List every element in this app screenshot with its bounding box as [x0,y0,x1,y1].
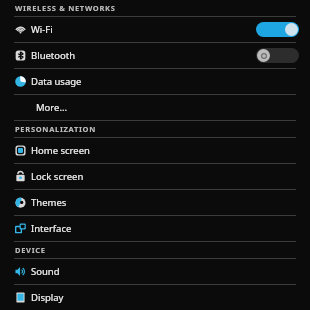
staticText: Wi-Fi [31,23,53,36]
button[interactable]: Wi-Fi [0,17,310,42]
button[interactable]: Sound [0,259,310,284]
button[interactable]: Home screen [0,138,310,163]
staticText: WIRELESS & NETWORKS [15,3,116,13]
staticText: Bluetooth [31,49,76,62]
button[interactable]: Data usage [0,69,310,94]
staticText: DEVICE [15,245,46,255]
staticText: PERSONALIZATION [15,124,97,134]
button[interactable]: Bluetooth [0,43,310,68]
button[interactable]: Lock screen [0,164,310,189]
button[interactable]: Themes [0,190,310,215]
button[interactable]: Display [0,285,310,310]
staticText: Data usage [31,75,82,88]
button[interactable]: Interface [0,216,310,241]
staticText: Sound [31,265,60,278]
staticText: Interface [31,222,72,235]
button[interactable]: More... [0,95,310,120]
staticText: Display [31,291,64,304]
staticText: More... [36,101,68,114]
staticText: Themes [31,196,67,209]
staticText: Home screen [31,144,90,157]
staticText: Lock screen [31,170,84,183]
